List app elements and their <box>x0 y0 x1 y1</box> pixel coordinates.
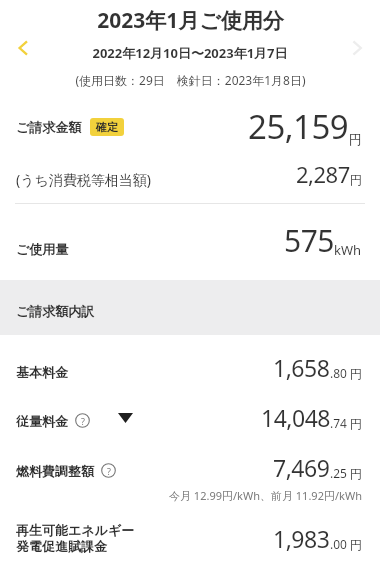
button[interactable]: 説明 <box>72 410 93 431</box>
staticText: 1,983 <box>273 523 330 554</box>
staticText: kWh <box>334 241 362 259</box>
button[interactable]: 内訳を開く <box>111 404 139 432</box>
staticText: 円 <box>350 466 362 481</box>
button[interactable]: 基本料金 <box>0 352 380 383</box>
button[interactable]: ご使用量 <box>0 220 380 261</box>
staticText: 575 <box>284 220 334 261</box>
staticText: 円 <box>350 366 362 381</box>
staticText: ? <box>107 465 111 477</box>
staticText: .25 <box>330 465 347 481</box>
button[interactable]: 次の月 <box>340 31 374 65</box>
button[interactable]: 再生可能エネルギー <box>0 522 380 554</box>
staticText: 従量料金 <box>16 413 68 429</box>
staticText: 円 <box>349 131 362 147</box>
staticText: ? <box>81 415 85 427</box>
staticText: (使用日数：29日 検針日：2023年1月8日) <box>75 72 306 88</box>
staticText: .80 <box>330 365 347 381</box>
staticText: 2,287 <box>296 159 350 189</box>
staticText: 円 <box>350 416 362 431</box>
staticText: 燃料費調整額 <box>16 463 94 479</box>
staticText: ご使用量 <box>16 241 69 257</box>
staticText: 再生可能エネルギー <box>16 522 135 538</box>
staticText: 確定 <box>96 120 118 134</box>
button[interactable]: 従量料金 <box>0 402 380 433</box>
staticText: 発電促進賦課金 <box>16 538 107 554</box>
staticText: 7,469 <box>273 452 330 483</box>
staticText: 25,159 <box>248 104 349 149</box>
button[interactable]: ご請求金額 <box>0 104 380 149</box>
staticText: .00 <box>330 536 347 552</box>
staticText: .74 <box>330 415 347 431</box>
staticText: (うち消費税等相当額) <box>16 170 152 189</box>
staticText: 基本料金 <box>16 364 68 380</box>
staticText: 14,048 <box>261 402 330 433</box>
staticText: 2023年1月ご使用分 <box>97 6 284 35</box>
staticText: ご請求額内訳 <box>16 303 95 319</box>
button[interactable]: 前の月 <box>6 31 40 65</box>
staticText: 今月 12.99円/kWh、前月 11.92円/kWh <box>169 488 362 503</box>
staticText: 1,658 <box>273 352 330 383</box>
button[interactable]: 燃料費調整額 <box>0 452 380 503</box>
staticText: ご請求金額 <box>16 119 82 135</box>
staticText: 円 <box>350 172 362 187</box>
staticText: 円 <box>350 537 362 552</box>
button[interactable]: 説明 <box>98 460 119 481</box>
staticText: 2022年12月10日〜2023年1月7日 <box>92 44 288 62</box>
